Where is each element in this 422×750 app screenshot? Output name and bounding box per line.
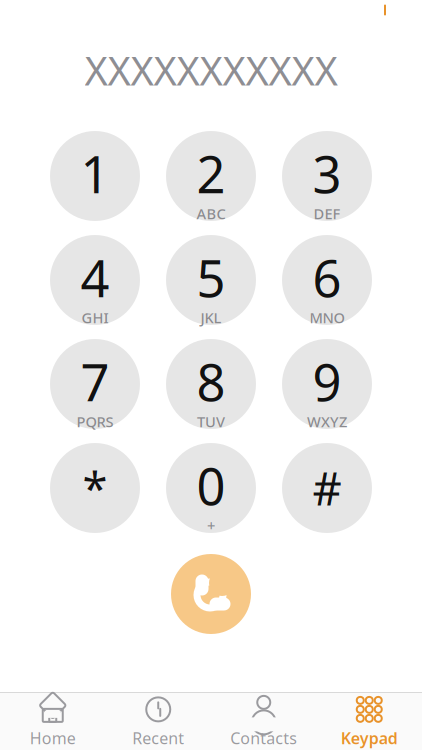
button[interactable]: 3 xyxy=(282,131,372,221)
staticText: TUV xyxy=(197,412,225,431)
button[interactable]: Contacts xyxy=(211,693,316,750)
staticText: * xyxy=(82,458,107,518)
staticText: 7 xyxy=(80,348,109,415)
button[interactable]: 4 xyxy=(50,235,140,325)
button[interactable]: 2 xyxy=(166,131,256,221)
staticText: DEF xyxy=(313,204,340,223)
button[interactable]: 7 xyxy=(50,339,140,429)
button[interactable]: 1 xyxy=(50,131,140,221)
button[interactable]: Home xyxy=(0,693,105,750)
staticText: XXXXXXXXXXX xyxy=(84,43,337,96)
staticText: Recent xyxy=(132,727,184,749)
staticText: 4 xyxy=(80,244,109,311)
staticText: MNO xyxy=(309,308,344,327)
staticText: 9 xyxy=(312,348,341,415)
staticText: 5 xyxy=(196,244,225,311)
staticText: 6 xyxy=(312,244,341,311)
button[interactable]: Keypad xyxy=(316,693,422,750)
staticText: + xyxy=(207,516,215,535)
button[interactable]: Recent xyxy=(105,693,211,750)
button[interactable]: 9 xyxy=(282,339,372,429)
staticText: Contacts xyxy=(230,727,297,749)
button[interactable]: # xyxy=(282,443,372,533)
button[interactable]: 6 xyxy=(282,235,372,325)
button[interactable]: * xyxy=(50,443,140,533)
button[interactable]: 5 xyxy=(166,235,256,325)
staticText: GHI xyxy=(81,308,108,327)
staticText: 0 xyxy=(196,452,225,519)
button[interactable]: 8 xyxy=(166,339,256,429)
staticText: ABC xyxy=(196,204,225,223)
staticText: Keypad xyxy=(341,727,398,749)
button[interactable]: Call xyxy=(171,554,251,634)
staticText: JKL xyxy=(200,308,221,327)
staticText: 3 xyxy=(312,140,341,207)
staticText: WXYZ xyxy=(307,412,347,431)
staticText: # xyxy=(312,458,341,518)
staticText: Home xyxy=(30,727,76,749)
staticText: 1 xyxy=(80,140,109,207)
staticText: 8 xyxy=(196,348,225,415)
staticText: 2 xyxy=(196,140,225,207)
staticText: PQRS xyxy=(76,412,113,431)
button[interactable]: 0 xyxy=(166,443,256,533)
